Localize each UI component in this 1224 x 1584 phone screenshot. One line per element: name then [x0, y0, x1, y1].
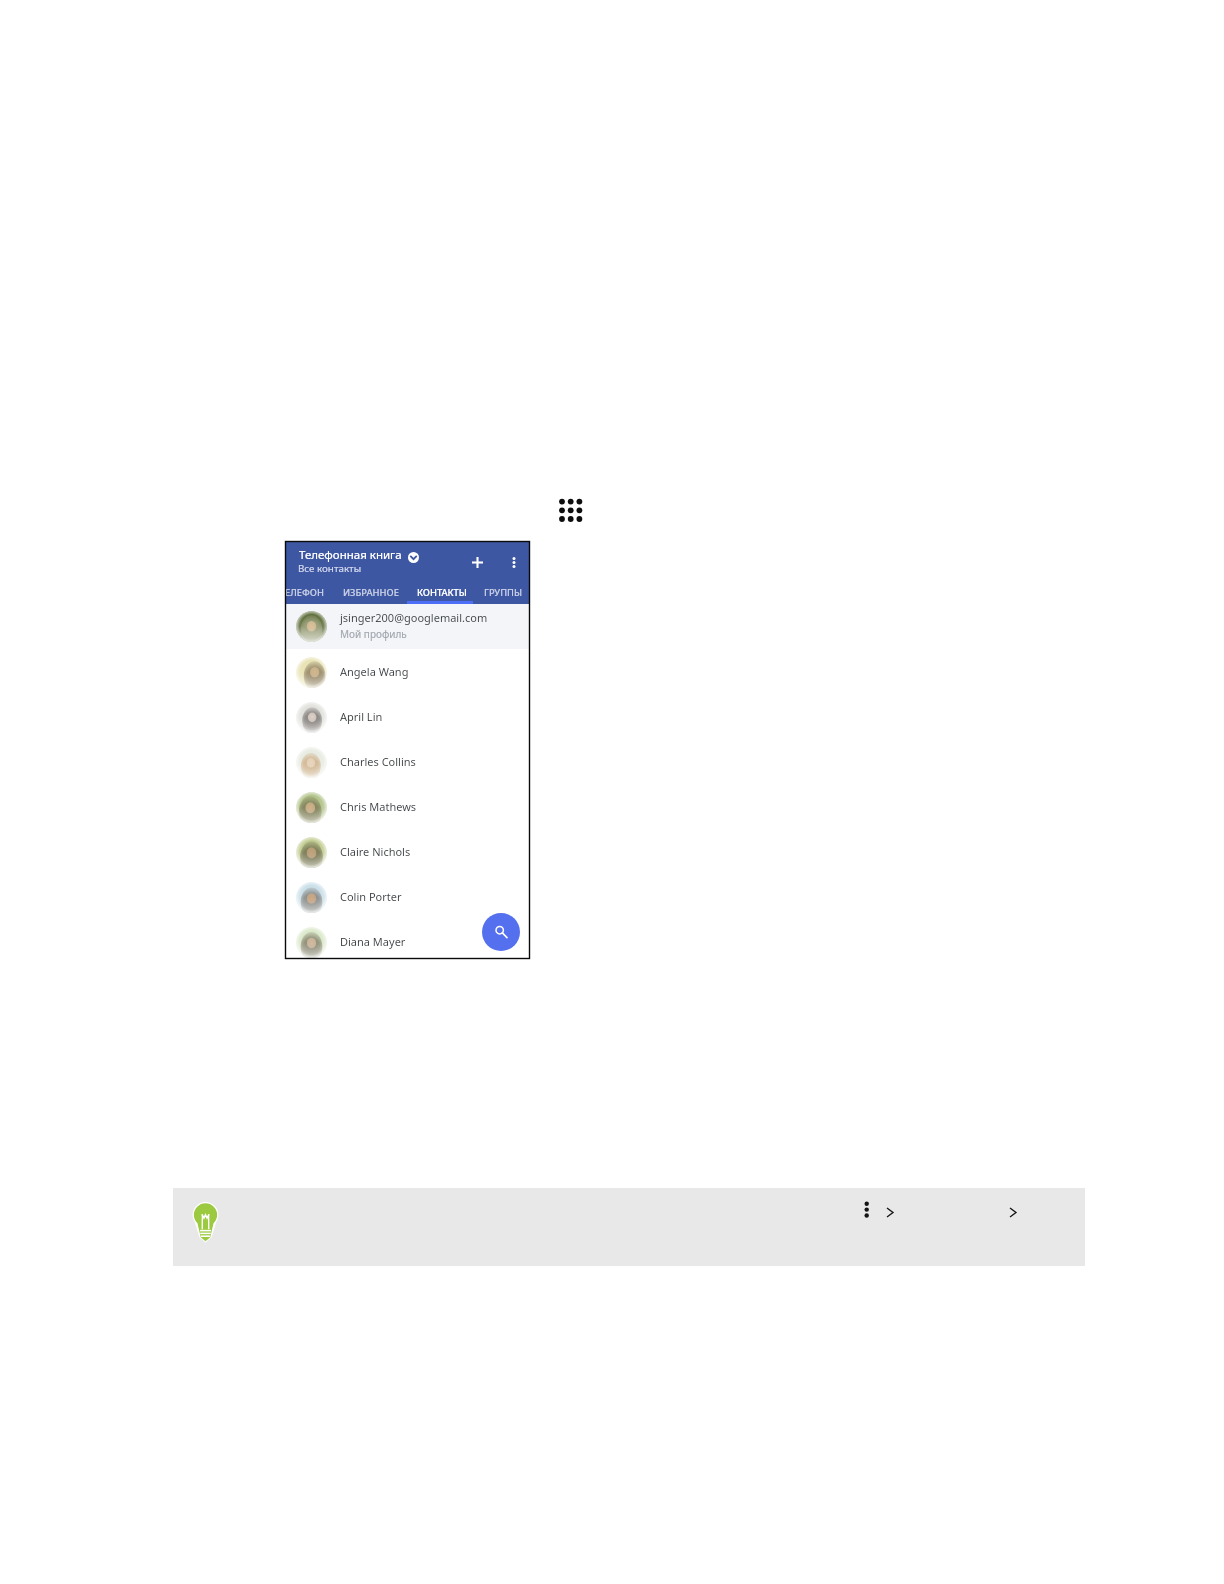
staticText: Мой профиль	[340, 627, 407, 641]
button[interactable]: Apps	[554, 494, 586, 526]
staticText: Charles Collins	[340, 754, 416, 769]
button[interactable]: ЕЛЕФОН	[283, 583, 325, 602]
staticText: Diana Mayer	[340, 934, 406, 949]
button[interactable]: More options	[501, 550, 526, 575]
staticText: Chris Mathews	[340, 799, 417, 814]
staticText: Claire Nichols	[340, 844, 411, 859]
staticText: jsinger200@googlemail.com	[340, 610, 488, 625]
button[interactable]	[285, 920, 530, 965]
staticText: ИЗБРАННОЕ	[343, 586, 399, 599]
button[interactable]	[285, 695, 530, 740]
button[interactable]: Add contact	[465, 550, 490, 575]
staticText: ЕЛЕФОН	[285, 586, 324, 599]
staticText: April Lin	[340, 709, 383, 724]
staticText: Colin Porter	[340, 889, 402, 904]
button[interactable]	[285, 785, 530, 830]
button[interactable]: ГРУППЫ	[483, 583, 524, 602]
button[interactable]: ИЗБРАННОЕ	[343, 583, 399, 602]
staticText: КОНТАКТЫ	[417, 586, 467, 599]
staticText: Телефонная книга	[299, 547, 402, 563]
button[interactable]: Search	[482, 913, 520, 951]
staticText: ГРУППЫ	[484, 586, 523, 599]
button[interactable]	[285, 650, 530, 695]
button[interactable]	[285, 740, 530, 785]
button[interactable]	[285, 604, 530, 649]
button[interactable]	[285, 875, 530, 920]
button[interactable]	[285, 830, 530, 875]
button[interactable]: КОНТАКТЫ	[416, 583, 467, 602]
staticText: Angela Wang	[340, 664, 409, 679]
staticText: Все контакты	[298, 562, 362, 575]
